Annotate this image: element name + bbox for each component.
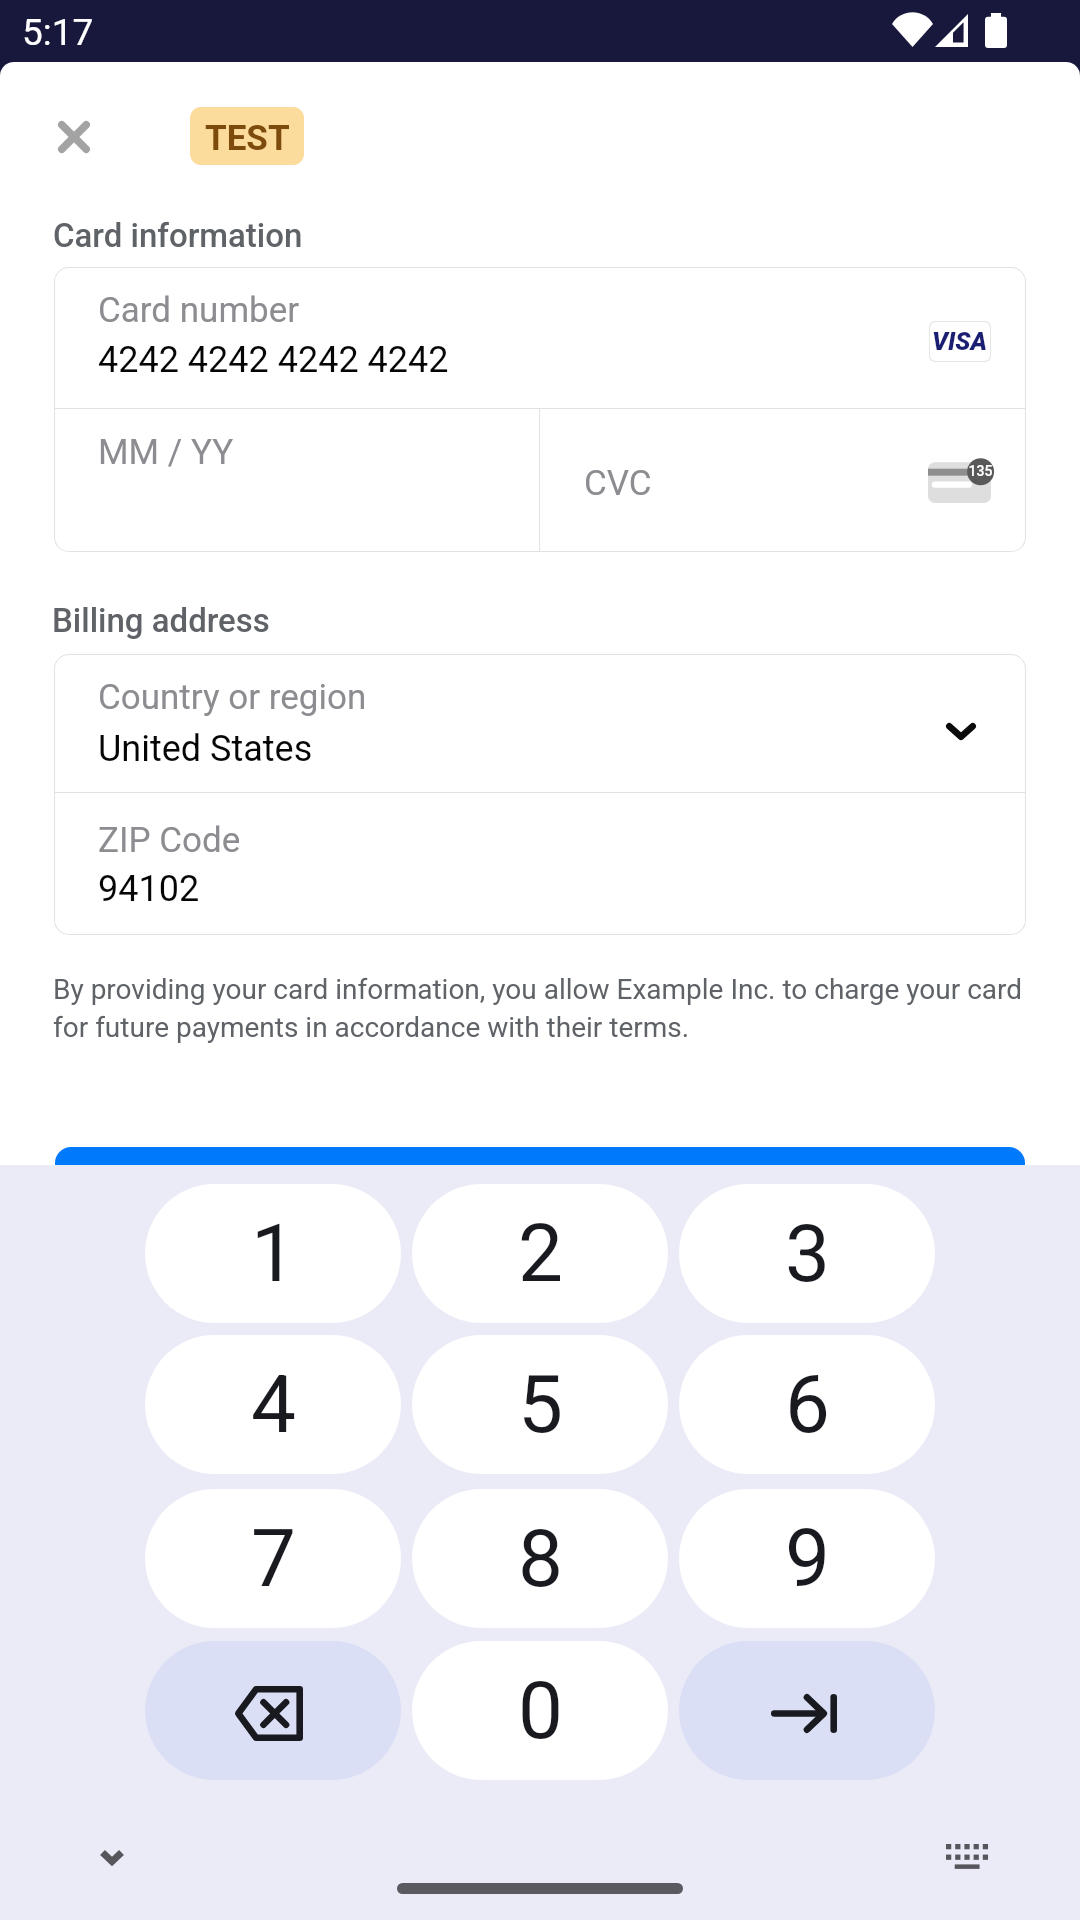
staticText: Country or region — [98, 677, 367, 718]
button[interactable]: Backspace — [145, 1641, 401, 1780]
staticText: 5:17 — [22, 11, 94, 54]
button[interactable]: Country or region — [54, 654, 1026, 792]
button[interactable]: 7 — [145, 1489, 401, 1628]
staticText: 94102 — [98, 868, 200, 910]
staticText: CVC — [584, 463, 652, 504]
button[interactable]: Hide keyboard — [68, 1813, 156, 1901]
staticText: 2 — [518, 1207, 563, 1301]
staticText: 8 — [518, 1512, 563, 1606]
staticText: 135 — [967, 463, 994, 479]
button[interactable]: 2 — [412, 1184, 668, 1323]
staticText: 4242 4242 4242 4242 — [98, 339, 449, 381]
button[interactable]: CVC — [540, 409, 1026, 552]
staticText: 5 — [518, 1358, 563, 1452]
staticText: MM / YY — [98, 432, 234, 473]
button[interactable]: 8 — [412, 1489, 668, 1628]
staticText: TEST — [205, 118, 290, 159]
button[interactable]: 0 — [412, 1641, 668, 1780]
staticText: Card information — [53, 216, 303, 255]
button[interactable]: 6 — [679, 1335, 935, 1474]
button[interactable]: Close — [30, 93, 118, 181]
staticText: 7 — [251, 1512, 296, 1606]
staticText: 9 — [785, 1512, 830, 1606]
button[interactable]: TEST — [190, 107, 304, 165]
staticText: VISA — [932, 327, 988, 356]
staticText: Card number — [98, 290, 300, 331]
button[interactable]: ZIP Code — [54, 793, 1026, 935]
button[interactable]: Card number — [54, 267, 1026, 408]
staticText: Billing address — [52, 601, 270, 640]
staticText: ZIP Code — [98, 820, 241, 861]
button[interactable]: Switch keyboard — [923, 1812, 1011, 1900]
staticText: United States — [98, 728, 313, 770]
staticText: By providing your card information, you … — [53, 973, 1025, 1044]
button[interactable]: 5 — [412, 1335, 668, 1474]
button[interactable]: 9 — [679, 1489, 935, 1628]
button[interactable]: 3 — [679, 1184, 935, 1323]
staticText: 0 — [518, 1664, 563, 1758]
button[interactable]: Next field — [679, 1641, 935, 1780]
button[interactable]: MM / YY — [54, 409, 539, 552]
button[interactable]: 1 — [145, 1184, 401, 1323]
staticText: 1 — [251, 1207, 296, 1301]
staticText: 4 — [251, 1358, 296, 1452]
staticText: 3 — [785, 1207, 830, 1301]
button[interactable]: 4 — [145, 1335, 401, 1474]
button[interactable] — [55, 1147, 1025, 1165]
staticText: 6 — [785, 1358, 830, 1452]
